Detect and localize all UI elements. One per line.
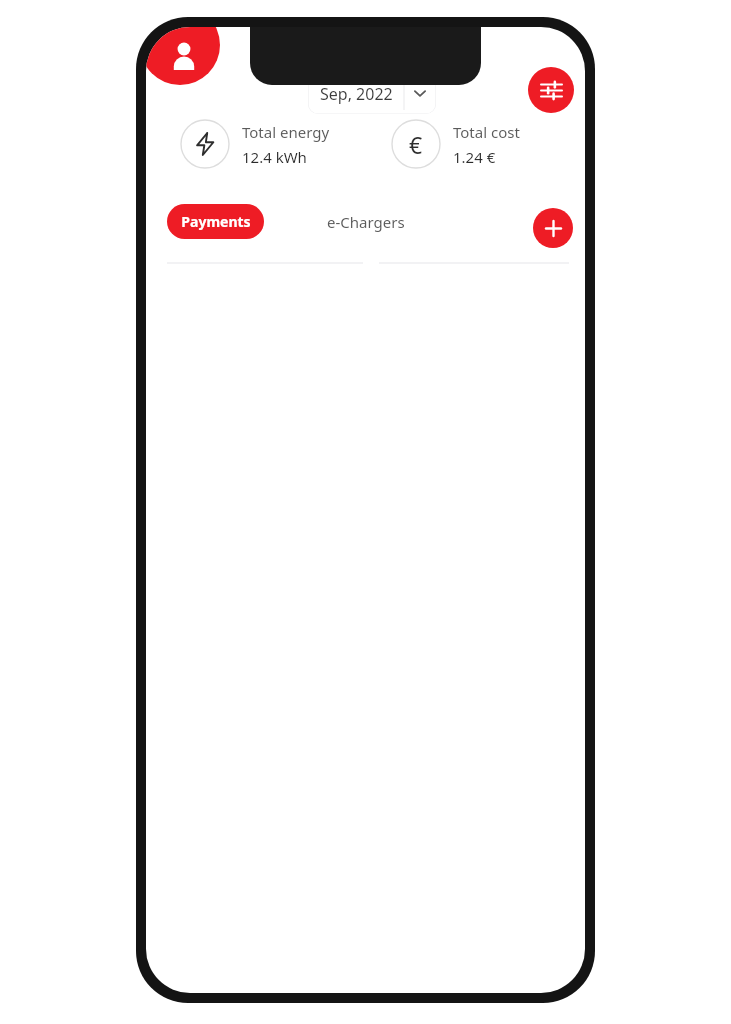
staticText: Total cost — [453, 122, 520, 142]
button[interactable]: Add — [533, 208, 573, 248]
staticText: Total energy — [242, 122, 330, 142]
button[interactable]: e-Chargers — [306, 204, 426, 239]
staticText: e-Chargers — [327, 212, 405, 232]
staticText: Sep, 2022 — [320, 83, 393, 105]
staticText: 12.4 kWh — [242, 147, 307, 167]
button[interactable]: Profile — [146, 27, 220, 85]
button[interactable]: € — [391, 119, 520, 169]
button[interactable]: Sep, 2022 — [308, 72, 436, 114]
button[interactable]: Filter — [528, 67, 574, 113]
button[interactable]: Payments — [167, 204, 264, 239]
staticText: Payments — [181, 212, 251, 231]
staticText: € — [409, 129, 423, 160]
button[interactable]: Total energy — [180, 119, 330, 169]
staticText: 1.24 € — [453, 147, 496, 167]
